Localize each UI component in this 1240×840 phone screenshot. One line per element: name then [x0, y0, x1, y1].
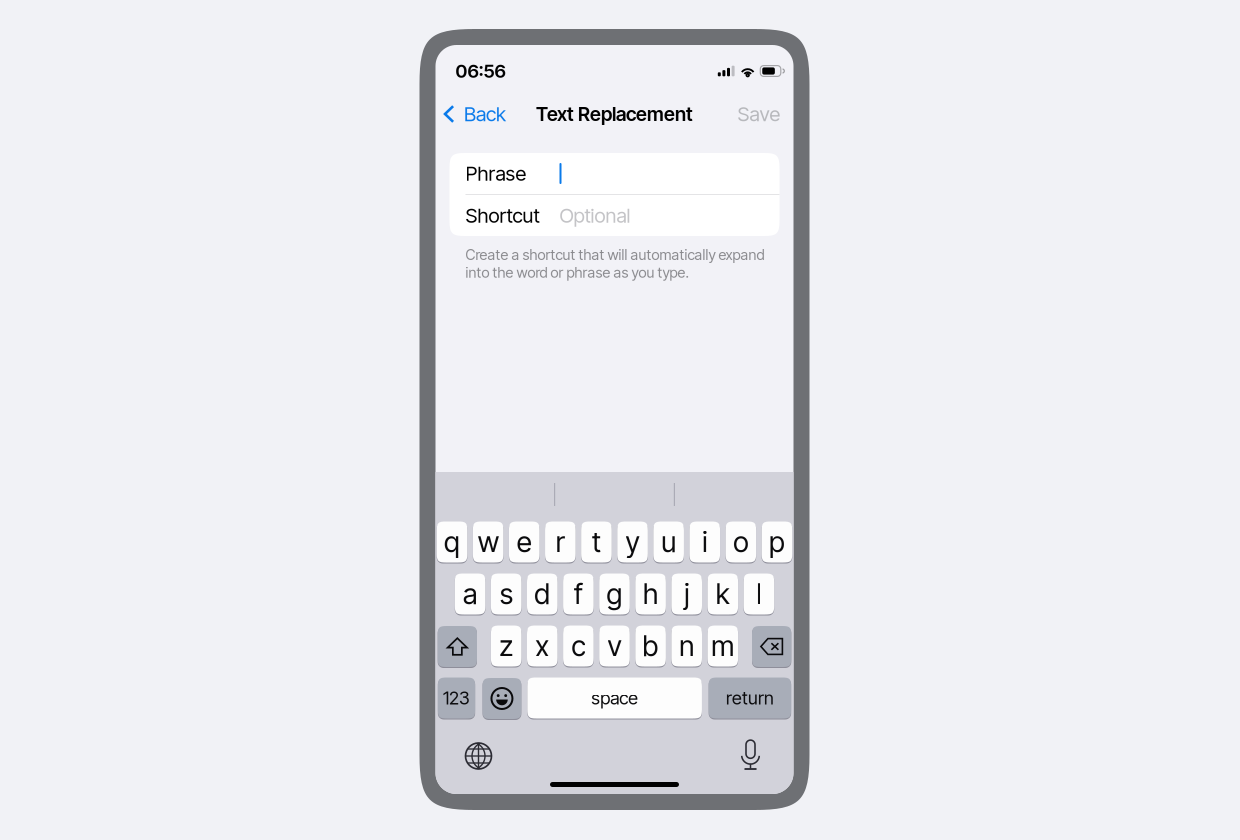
button[interactable]: space [527, 677, 702, 719]
button[interactable]: u [653, 521, 684, 563]
staticText: v [607, 629, 621, 663]
button[interactable]: c [563, 625, 594, 667]
staticText: Back [464, 102, 506, 126]
staticText: o [733, 525, 748, 559]
staticText: e [517, 525, 532, 559]
staticText: s [500, 577, 513, 611]
button[interactable]: k [707, 573, 738, 615]
staticText: x [535, 629, 549, 663]
button[interactable]: w [473, 521, 503, 563]
staticText: c [571, 629, 585, 663]
staticText: a [463, 577, 477, 611]
staticText: m [711, 629, 734, 663]
staticText: q [444, 525, 460, 559]
button[interactable]: g [599, 573, 630, 615]
staticText: l [756, 577, 761, 611]
button[interactable]: l [744, 573, 774, 615]
staticText: 123 [443, 687, 470, 709]
staticText: y [625, 525, 639, 559]
button[interactable]: Shift [438, 626, 477, 667]
staticText: Create a shortcut that will automaticall… [465, 246, 764, 281]
button[interactable]: Emoji [482, 678, 521, 719]
staticText: b [643, 629, 659, 663]
staticText: Shortcut [465, 203, 539, 228]
staticText: n [679, 629, 694, 663]
staticText: k [716, 577, 730, 611]
button[interactable]: d [527, 573, 558, 615]
button[interactable]: z [491, 625, 521, 667]
button[interactable]: m [707, 625, 738, 667]
button[interactable]: y [617, 521, 648, 563]
button[interactable]: j [671, 573, 702, 615]
button[interactable]: x [527, 625, 558, 667]
button[interactable]: v [599, 625, 630, 667]
staticText: z [499, 629, 513, 663]
button[interactable]: b [635, 625, 666, 667]
button[interactable]: q [437, 521, 467, 563]
button[interactable]: o [725, 521, 756, 563]
staticText: Save [737, 102, 780, 126]
staticText: Text Replacement [536, 102, 693, 126]
staticText: Phrase [465, 161, 526, 186]
staticText: r [556, 525, 565, 559]
staticText: return [726, 687, 774, 709]
staticText: i [702, 525, 707, 559]
button[interactable]: r [545, 521, 576, 563]
button[interactable]: Dictation [736, 742, 764, 770]
button[interactable]: return [709, 677, 791, 719]
button[interactable]: s [491, 573, 521, 615]
button[interactable]: Delete [752, 626, 791, 667]
staticText: 06:56 [455, 60, 505, 82]
button[interactable]: f [563, 573, 594, 615]
button[interactable]: Phrase [449, 153, 779, 194]
button[interactable]: i [689, 521, 720, 563]
button[interactable]: h [635, 573, 666, 615]
button[interactable]: e [509, 521, 539, 563]
staticText: g [606, 577, 622, 611]
button[interactable]: Back [435, 92, 516, 136]
button[interactable]: a [455, 573, 485, 615]
staticText: d [534, 577, 550, 611]
staticText: h [643, 577, 658, 611]
staticText: w [478, 525, 499, 559]
button[interactable]: 123 [438, 677, 475, 719]
staticText: space [591, 687, 638, 709]
staticText: p [769, 525, 785, 559]
button[interactable]: n [671, 625, 702, 667]
staticText: Optional [559, 203, 630, 228]
button[interactable]: Shortcut [449, 195, 779, 236]
staticText: u [661, 525, 676, 559]
button[interactable]: Save [727, 92, 793, 136]
staticText: f [574, 577, 583, 611]
button[interactable]: t [581, 521, 612, 563]
button[interactable]: Next keyboard [464, 742, 492, 770]
staticText: t [592, 525, 601, 559]
staticText: j [684, 577, 689, 611]
button[interactable]: p [762, 521, 792, 563]
